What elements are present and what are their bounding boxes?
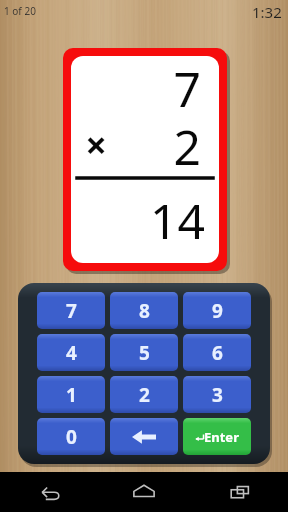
staticText: 4 — [66, 340, 77, 366]
button[interactable]: 2 — [110, 376, 178, 413]
staticText: 2 — [173, 114, 201, 174]
staticText: 7 — [66, 298, 77, 324]
button[interactable]: 7 — [37, 292, 105, 329]
button[interactable]: 3 — [183, 376, 251, 413]
staticText: 0 — [66, 424, 77, 450]
button[interactable]: 9 — [183, 292, 251, 329]
staticText: Enter — [204, 428, 239, 446]
staticText: 8 — [139, 298, 150, 324]
staticText: 1:32 — [252, 2, 282, 22]
staticText: 9 — [212, 298, 223, 324]
staticText: 1 of 20 — [4, 4, 36, 18]
staticText: 6 — [212, 340, 223, 366]
staticText: × — [85, 118, 107, 170]
button[interactable]: Recent apps — [192, 472, 288, 512]
staticText: 2 — [139, 382, 150, 408]
button[interactable]: Backspace — [110, 418, 178, 455]
staticText: 3 — [212, 382, 223, 408]
button[interactable]: 8 — [110, 292, 178, 329]
button[interactable]: 6 — [183, 334, 251, 371]
button[interactable]: 0 — [37, 418, 105, 455]
staticText: 7 — [173, 56, 201, 114]
button[interactable]: 4 — [37, 334, 105, 371]
staticText: 14 — [150, 188, 205, 253]
button[interactable]: 5 — [110, 334, 178, 371]
button[interactable]: Home — [96, 472, 192, 512]
button[interactable]: 1 — [37, 376, 105, 413]
button[interactable]: Enter — [183, 418, 251, 455]
staticText: 5 — [139, 340, 150, 366]
button[interactable]: Back — [0, 472, 96, 512]
staticText: 1 — [66, 382, 77, 408]
